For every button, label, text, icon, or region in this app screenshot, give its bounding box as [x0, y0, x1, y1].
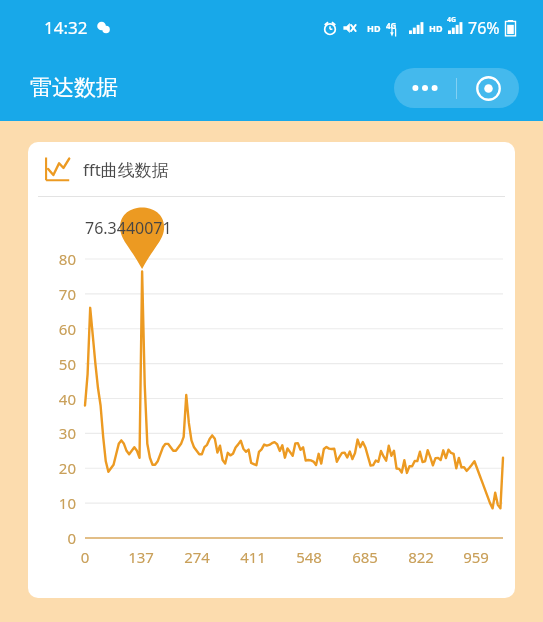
- staticText: 雷达数据: [30, 74, 118, 102]
- staticText: fft曲线数据: [83, 158, 169, 181]
- staticText: 80: [32, 249, 76, 269]
- staticText: 4G: [386, 20, 397, 31]
- staticText: 685: [349, 547, 381, 567]
- button[interactable]: fft曲线数据: [28, 142, 515, 598]
- staticText: 0: [69, 547, 101, 567]
- staticText: 70: [32, 284, 76, 304]
- staticText: 76.3440071: [85, 217, 172, 239]
- staticText: 30: [32, 423, 76, 443]
- staticText: 959: [460, 547, 492, 567]
- staticText: HD: [429, 22, 443, 34]
- staticText: 4G: [447, 15, 457, 25]
- staticText: 50: [32, 354, 76, 374]
- staticText: 548: [293, 547, 325, 567]
- staticText: 60: [32, 319, 76, 339]
- staticText: 40: [32, 389, 76, 409]
- staticText: 20: [32, 458, 76, 478]
- staticText: HD: [367, 22, 381, 34]
- staticText: 822: [405, 547, 437, 567]
- button[interactable]: More options: [394, 68, 456, 108]
- staticText: 10: [32, 493, 76, 513]
- staticText: 411: [237, 547, 269, 567]
- staticText: 274: [181, 547, 213, 567]
- staticText: 14:32: [44, 16, 88, 39]
- staticText: 137: [125, 547, 157, 567]
- button[interactable]: Close: [457, 68, 519, 108]
- staticText: 76%: [468, 17, 500, 39]
- staticText: 0: [32, 528, 76, 548]
